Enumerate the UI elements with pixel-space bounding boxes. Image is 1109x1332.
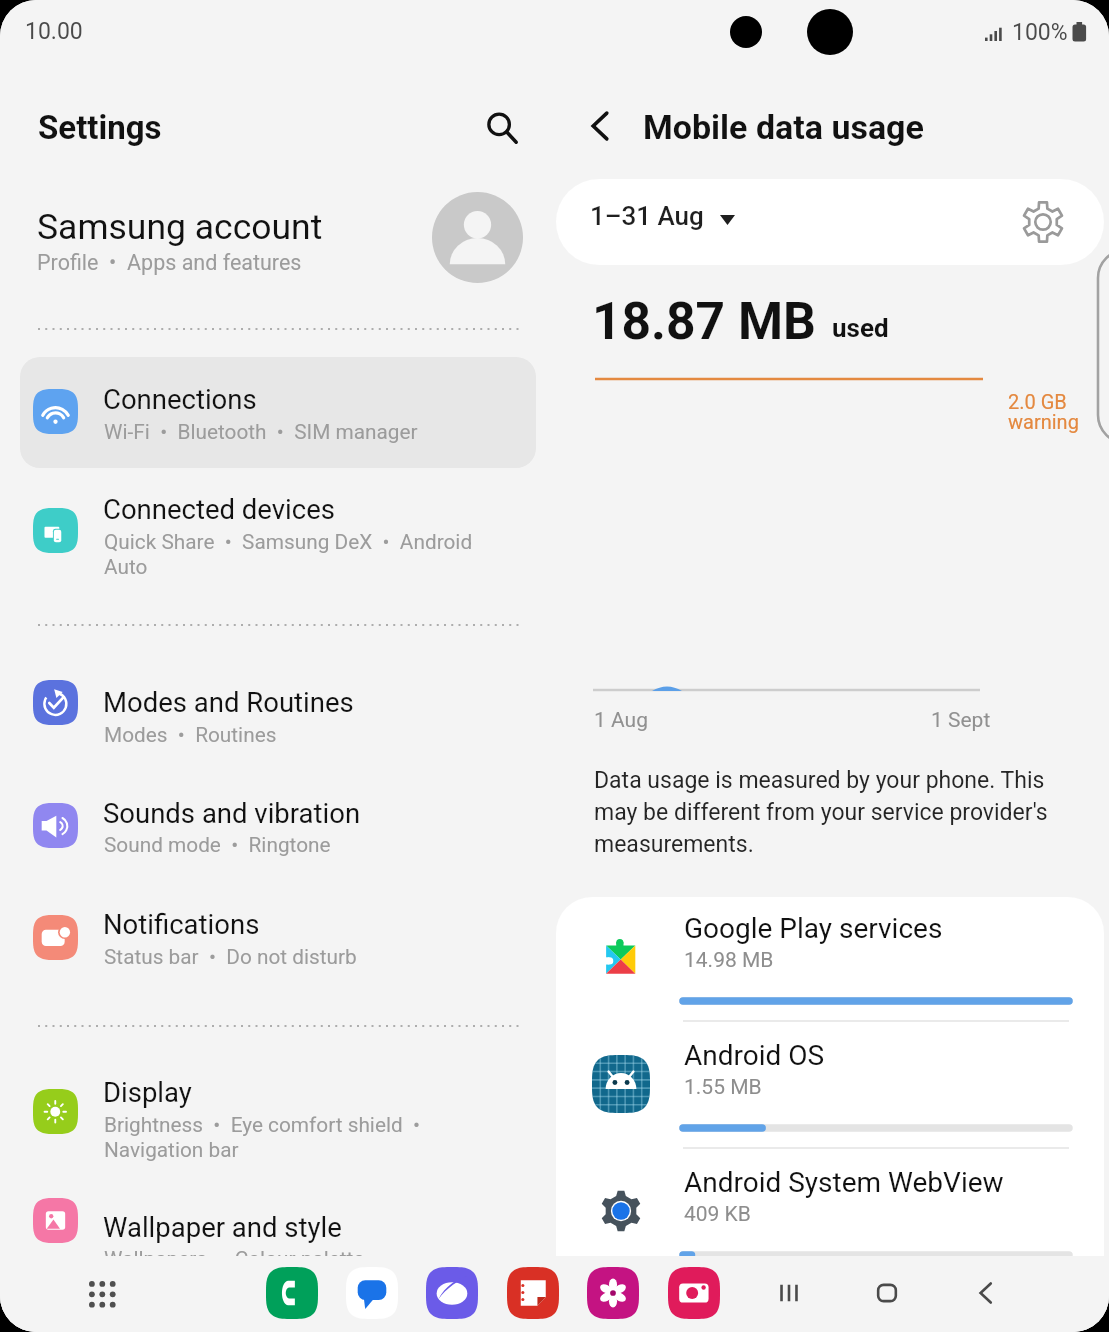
staticText: Modes and Routines	[103, 686, 354, 718]
staticText: Connections	[103, 383, 257, 415]
staticText: 409 KB	[684, 1202, 751, 1227]
button[interactable]	[20, 357, 536, 468]
staticText: 10.00	[25, 18, 83, 45]
button[interactable]: INTERNET	[426, 1267, 478, 1319]
staticText: Data usage is measured by your phone. Th…	[594, 767, 1074, 858]
button[interactable]: Apps	[74, 1266, 130, 1322]
staticText: Settings	[38, 108, 162, 147]
staticText: Modes • Routines	[104, 723, 277, 747]
staticText: Display	[103, 1076, 192, 1108]
staticText: 1 Aug	[594, 708, 648, 733]
staticText: warning	[1008, 410, 1079, 433]
staticText: 1–31 Aug	[590, 201, 704, 231]
button[interactable]: HOME	[860, 1266, 914, 1320]
staticText: Sounds and vibration	[103, 797, 361, 829]
button[interactable]: PHONE	[266, 1267, 318, 1319]
button[interactable]	[20, 650, 536, 761]
button[interactable]: Data usage settings	[1019, 198, 1067, 246]
button[interactable]	[20, 1050, 536, 1178]
staticText: Google Play services	[684, 912, 943, 945]
button[interactable]	[556, 1151, 1109, 1278]
button[interactable]: MESSAGES	[346, 1267, 398, 1319]
button[interactable]: GALLERY	[587, 1267, 639, 1319]
button[interactable]: NOTES	[507, 1267, 559, 1319]
staticText: Connected devices	[103, 493, 335, 525]
button[interactable]	[0, 186, 556, 290]
staticText: 2.0 GB	[1008, 390, 1067, 413]
staticText: used	[832, 313, 889, 343]
staticText: Quick Share • Samsung DeX • Android Auto	[104, 530, 473, 579]
staticText: Android System WebView	[684, 1166, 1004, 1199]
staticText: Wallpapers • Colour palette	[104, 1247, 365, 1271]
button[interactable]: RECENTS	[762, 1266, 816, 1320]
button[interactable]: CAMERA	[668, 1267, 720, 1319]
button[interactable]: Back	[572, 98, 628, 154]
staticText: 1.55 MB	[684, 1075, 762, 1100]
staticText: 18.87 MB	[592, 291, 816, 351]
button[interactable]	[20, 478, 536, 606]
button[interactable]	[20, 773, 536, 884]
staticText: Wi-Fi • Bluetooth • SIM manager	[104, 420, 418, 444]
staticText: Wallpaper and style	[103, 1211, 342, 1243]
button[interactable]	[20, 885, 536, 996]
staticText: Mobile data usage	[643, 107, 924, 147]
button[interactable]: BACK	[959, 1266, 1013, 1320]
button[interactable]	[556, 897, 1109, 1024]
staticText: Sound mode • Ringtone	[104, 833, 331, 857]
staticText: Notifications	[103, 908, 260, 940]
staticText: Profile • Apps and features	[37, 250, 302, 275]
staticText: Brightness • Eye comfort shield • Naviga…	[104, 1113, 421, 1162]
button[interactable]	[556, 1024, 1109, 1151]
staticText: 1 Sept	[931, 708, 991, 733]
staticText: Samsung account	[37, 206, 323, 248]
button[interactable]	[580, 192, 740, 252]
button[interactable]: Search	[474, 100, 530, 156]
staticText: Android OS	[684, 1039, 825, 1072]
staticText: 14.98 MB	[684, 948, 774, 973]
button[interactable]	[20, 1168, 536, 1279]
staticText: 100%	[1012, 19, 1068, 46]
staticText: Status bar • Do not disturb	[104, 945, 357, 969]
